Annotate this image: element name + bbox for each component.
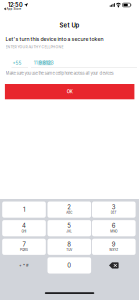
staticText: ABC (66, 211, 72, 214)
button[interactable]: 2 (47, 201, 91, 218)
staticText: Set Up (59, 22, 79, 29)
staticText: WXYZ (109, 248, 118, 252)
staticText: GHI (21, 230, 26, 233)
staticText: 11 9 8123 (34, 60, 54, 66)
staticText: App Store (6, 7, 21, 11)
staticText: 8 (67, 241, 71, 248)
button[interactable]: 6 (92, 220, 136, 236)
button[interactable]: Delete (92, 257, 136, 273)
staticText: 0 (67, 262, 71, 269)
staticText: MNO (110, 230, 117, 233)
button[interactable]: 7 (2, 239, 46, 255)
staticText: 5 (67, 222, 71, 229)
staticText: 6 (112, 222, 116, 229)
button[interactable]: 9 (92, 239, 136, 255)
staticText: 2 (67, 203, 71, 211)
button[interactable]: App Store (3, 7, 22, 11)
staticText: 1 (23, 206, 25, 213)
button[interactable]: 4 (2, 220, 46, 236)
button[interactable]: OK (5, 84, 134, 99)
button[interactable]: 3 (92, 201, 136, 218)
staticText: 7 (22, 241, 25, 248)
staticText: 9 (112, 241, 116, 248)
staticText: OK (67, 89, 73, 94)
staticText: DEF (111, 211, 117, 214)
staticText: ENTER YOUR AUTHY CELLPHONE (5, 45, 63, 49)
staticText: 12:50 (8, 2, 23, 8)
staticText: JKL (66, 230, 72, 233)
staticText: TUV (66, 248, 72, 252)
staticText: Let's turn this device into a secure tok… (5, 36, 103, 42)
button[interactable]: Symbols (2, 257, 46, 273)
button[interactable]: 8 (47, 239, 91, 255)
button[interactable]: 5 (47, 220, 91, 236)
staticText: Make sure you use the same cellphone acr… (5, 71, 113, 76)
staticText: 4 (22, 222, 26, 229)
button[interactable]: 1 (2, 201, 46, 218)
staticText: PQRS (20, 248, 28, 252)
staticText: + * # (19, 263, 29, 268)
button[interactable]: 0 (47, 257, 91, 273)
staticText: +55 (13, 60, 22, 66)
staticText: 3 (112, 203, 116, 211)
